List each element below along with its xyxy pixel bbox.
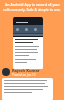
staticText: calls securely. Safe & simple to use. bbox=[3, 7, 61, 12]
staticText: An Android App to record all your bbox=[5, 2, 60, 7]
staticText: Posted on Jan 12 bbox=[12, 73, 36, 77]
button[interactable]: Author avatar bbox=[2, 67, 64, 77]
other: Author avatar bbox=[2, 68, 10, 76]
staticText: Rajesh Kumar bbox=[12, 68, 40, 73]
button[interactable] bbox=[2, 78, 53, 100]
button[interactable] bbox=[13, 17, 43, 69]
